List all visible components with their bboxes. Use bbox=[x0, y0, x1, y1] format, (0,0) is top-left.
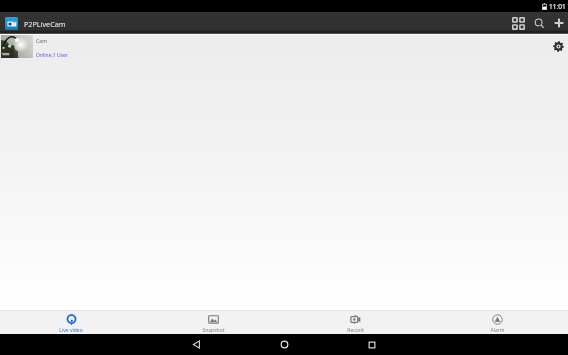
button[interactable]: Settings bbox=[549, 37, 567, 55]
staticText: Alarm bbox=[490, 327, 505, 334]
button[interactable]: Back bbox=[152, 334, 240, 355]
staticText: P2PLiveCam bbox=[24, 19, 66, 29]
button[interactable]: Live video bbox=[0, 311, 142, 334]
button[interactable]: Snapshot bbox=[142, 311, 284, 334]
button[interactable]: Record bbox=[284, 311, 426, 334]
button[interactable]: Cam bbox=[0, 35, 568, 58]
button[interactable]: Home bbox=[240, 334, 328, 355]
staticText: Live video bbox=[59, 327, 83, 334]
staticText: Cam bbox=[36, 37, 48, 44]
button[interactable]: Grid view bbox=[508, 12, 529, 34]
button[interactable]: P2PLiveCam bbox=[5, 17, 66, 30]
button[interactable]: Search bbox=[529, 12, 549, 34]
button[interactable]: Add camera bbox=[549, 12, 568, 34]
staticText: Snapshot bbox=[202, 327, 225, 334]
staticText: Record bbox=[347, 327, 364, 334]
button[interactable]: Recent apps bbox=[328, 334, 416, 355]
staticText: 11:01 bbox=[549, 2, 566, 11]
staticText: Online,1 User bbox=[36, 52, 68, 58]
button[interactable]: Alarm bbox=[426, 311, 568, 334]
